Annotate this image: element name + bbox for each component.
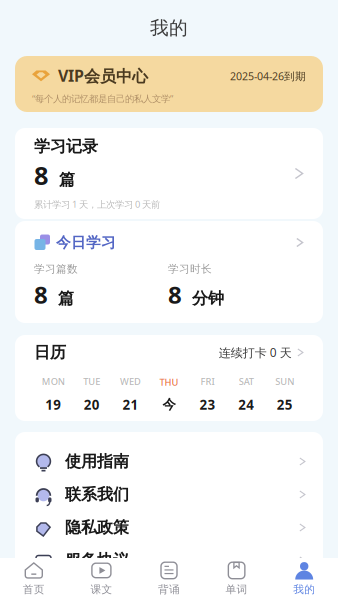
staticText: 学习时长 [168,262,212,276]
staticText: 今日学习 [56,233,116,251]
staticText: MON [42,375,65,388]
button[interactable]: 隐私政策 [15,511,323,544]
staticText: 累计学习 1 天，上次学习 0 天前 [34,198,160,210]
staticText: 单词 [226,583,248,596]
button[interactable]: 单词 [203,562,270,596]
button[interactable]: 背诵 [135,562,203,596]
button[interactable]: 使用指南 [15,445,323,478]
staticText: 学习记录 [34,137,98,156]
staticText: 联系我们 [65,485,129,504]
staticText: 连续打卡 0 天 [219,344,292,360]
staticText: 我的 [293,583,315,596]
button[interactable]: 今日学习 [15,221,323,323]
button[interactable]: 日历 [34,343,304,362]
staticText: 课文 [90,583,112,596]
staticText: 篇 [59,170,75,189]
staticText: 8 [34,158,48,192]
staticText: 2025-04-26到期 [230,69,306,83]
staticText: 背诵 [158,583,180,596]
staticText: 服务协议 [65,551,129,570]
staticText: 20 [84,396,100,413]
staticText: 分钟 [192,289,224,308]
staticText: 21 [122,396,138,413]
staticText: “每个人的记忆都是自己的私人文学” [32,92,173,105]
staticText: 首页 [23,583,45,596]
button[interactable]: 学习记录 [15,128,323,219]
staticText: VIP会员中心 [58,65,148,86]
staticText: THU [159,376,178,388]
staticText: 日历 [34,343,66,362]
staticText: 使用指南 [65,452,129,471]
staticText: FRI [201,375,215,388]
staticText: 23 [200,396,216,413]
staticText: 8 [34,279,48,310]
staticText: 24 [238,396,254,413]
button[interactable]: 服务协议 [15,544,323,577]
staticText: WED [120,375,141,388]
staticText: 我的 [150,16,188,39]
button[interactable]: VIP会员中心 [15,56,323,112]
staticText: SUN [275,375,294,388]
button[interactable]: 联系我们 [15,478,323,511]
staticText: TUE [83,375,100,388]
button[interactable]: 课文 [68,562,135,596]
staticText: SAT [239,375,254,388]
staticText: 学习篇数 [34,262,78,276]
staticText: 篇 [58,289,74,308]
staticText: 8 [168,279,182,310]
button[interactable]: 首页 [0,562,68,596]
staticText: 今 [162,396,175,413]
button[interactable]: 我的 [270,562,338,596]
staticText: 隐私政策 [65,518,129,537]
staticText: 25 [277,396,293,413]
staticText: 19 [45,396,61,413]
